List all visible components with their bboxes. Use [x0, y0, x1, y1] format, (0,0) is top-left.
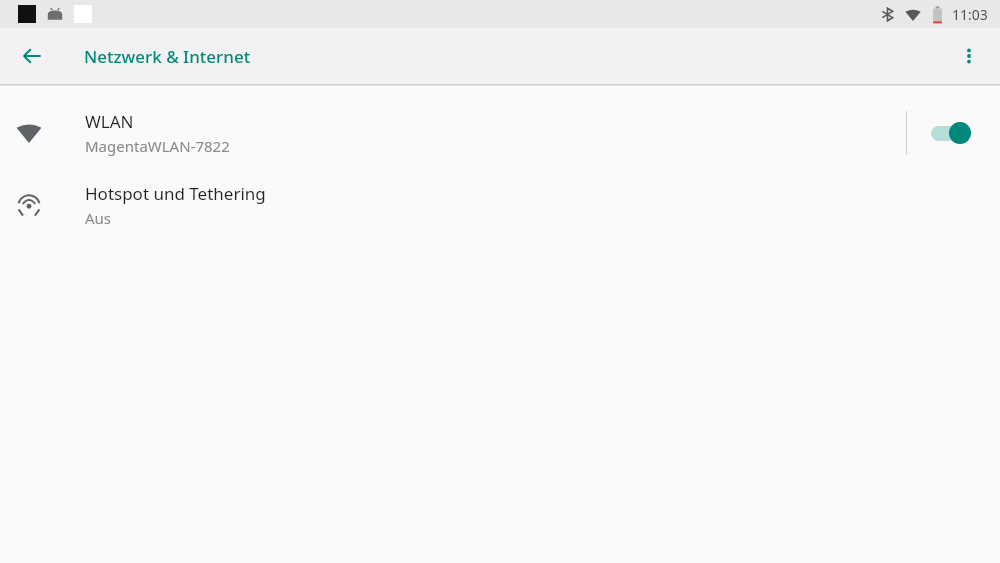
button[interactable]: WLAN [0, 97, 906, 169]
staticText: MagentaWLAN-7822 [85, 136, 230, 156]
button[interactable]: Weitere Optionen [945, 32, 993, 80]
button[interactable]: Hotspot und Tethering [0, 169, 1000, 241]
staticText: WLAN [85, 110, 134, 133]
staticText: Netzwerk & Internet [84, 45, 251, 68]
button[interactable]: WLAN aktivieren [907, 97, 1000, 169]
staticText: 11:03 [952, 5, 988, 24]
button[interactable]: Zurück [8, 32, 56, 80]
staticText: Hotspot und Tethering [85, 182, 266, 205]
staticText: Aus [85, 208, 112, 228]
